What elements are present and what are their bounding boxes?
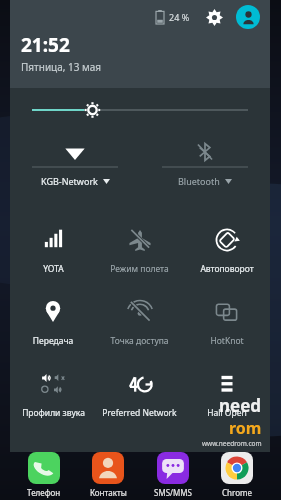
- button[interactable]: HotKnot: [183, 288, 270, 360]
- button[interactable]: Профили звука: [10, 360, 96, 432]
- staticText: YOTA: [43, 263, 64, 275]
- button[interactable]: Режим полета: [96, 216, 183, 288]
- staticText: Профили звука: [22, 407, 85, 419]
- staticText: Передача геоданных: [10, 335, 96, 347]
- button[interactable]: Точка доступа: [96, 288, 183, 360]
- button[interactable]: Chrome: [208, 452, 266, 498]
- staticText: need: [219, 394, 262, 417]
- button[interactable]: KGB-Network: [10, 138, 140, 200]
- staticText: Контакты: [90, 487, 127, 498]
- staticText: 24 %: [169, 11, 190, 23]
- button[interactable]: User profile: [236, 5, 260, 29]
- staticText: Автоповорот: [200, 263, 254, 275]
- staticText: 21:52: [21, 32, 70, 58]
- button[interactable]: Передача геоданных: [10, 288, 96, 360]
- staticText: KGB-Network: [41, 175, 98, 187]
- staticText: Точка доступа: [110, 335, 169, 347]
- button[interactable]: Settings: [202, 5, 226, 29]
- staticText: SMS/MMS: [154, 487, 192, 498]
- button[interactable]: Телефон: [15, 452, 73, 498]
- button[interactable]: Автоповорот: [183, 216, 270, 288]
- staticText: Bluetooth: [178, 175, 220, 187]
- button[interactable]: Brightness: [10, 88, 270, 132]
- button[interactable]: YOTA: [10, 216, 96, 288]
- staticText: HotKnot: [210, 335, 244, 347]
- staticText: rom: [229, 417, 262, 439]
- button[interactable]: SMS/MMS: [144, 452, 202, 498]
- button[interactable]: Hall Open: [183, 360, 270, 432]
- staticText: Телефон: [27, 487, 61, 498]
- staticText: Chrome: [222, 487, 252, 498]
- staticText: Preferred Network: [102, 407, 177, 419]
- button[interactable]: Preferred Network: [96, 360, 183, 432]
- button[interactable]: Bluetooth: [140, 138, 270, 200]
- staticText: Hall Open: [207, 407, 247, 419]
- staticText: www.needrom.com: [202, 439, 262, 448]
- staticText: Режим полета: [110, 263, 169, 275]
- staticText: Пятница, 13 мая: [21, 60, 102, 74]
- button[interactable]: Контакты: [79, 452, 137, 498]
